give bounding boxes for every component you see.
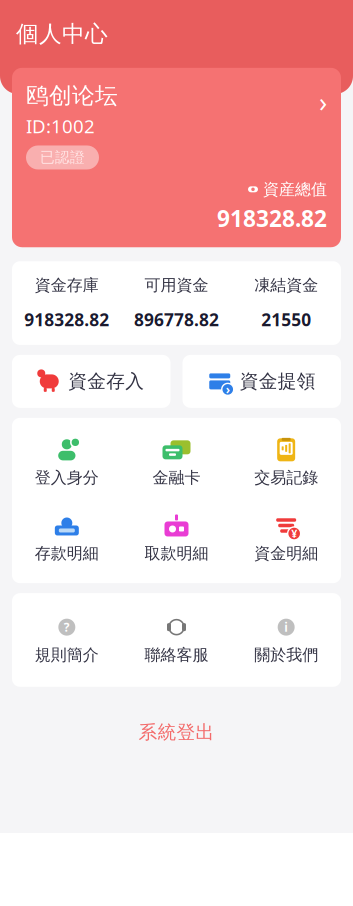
button[interactable]: 金融卡 bbox=[122, 432, 231, 493]
staticText: 896778.82 bbox=[134, 308, 219, 331]
button[interactable]: › bbox=[182, 355, 341, 408]
staticText: 21550 bbox=[261, 308, 311, 331]
staticText: 交易記錄 bbox=[254, 468, 318, 487]
staticText: 資産總值 bbox=[263, 179, 327, 199]
button[interactable]: 資金存入 bbox=[12, 355, 170, 408]
button[interactable]: ¥ bbox=[231, 507, 341, 569]
staticText: ID:1002 bbox=[26, 114, 95, 138]
staticText: 金融卡 bbox=[152, 468, 200, 487]
button[interactable]: 鸥创论坛 bbox=[12, 68, 341, 247]
staticText: 資金明細 bbox=[254, 543, 318, 563]
staticText: 資金提領 bbox=[240, 370, 316, 393]
staticText: 個人中心 bbox=[16, 20, 108, 48]
staticText: 918328.82 bbox=[24, 308, 109, 331]
button[interactable]: 交易記錄 bbox=[231, 432, 341, 493]
staticText: 可用資金 bbox=[144, 275, 208, 295]
staticText: 關於我們 bbox=[254, 645, 318, 665]
staticText: 登入身分 bbox=[35, 468, 99, 487]
staticText: 資金存入 bbox=[68, 370, 144, 393]
staticText: ? bbox=[64, 619, 70, 635]
staticText: 系統登出 bbox=[138, 721, 214, 744]
staticText: 取款明細 bbox=[144, 543, 208, 563]
staticText: 規則簡介 bbox=[35, 645, 99, 665]
button[interactable]: 系統登出 bbox=[108, 711, 244, 754]
staticText: i bbox=[284, 619, 288, 635]
staticText: 凍結資金 bbox=[254, 275, 318, 295]
staticText: 鸥创论坛 bbox=[26, 82, 118, 110]
staticText: 存款明細 bbox=[35, 543, 99, 563]
staticText: 資金存庫 bbox=[35, 275, 99, 295]
staticText: 聯絡客服 bbox=[144, 645, 208, 665]
button[interactable]: 登入身分 bbox=[12, 432, 122, 493]
button[interactable]: ? bbox=[12, 609, 122, 671]
button[interactable]: i bbox=[231, 609, 341, 671]
staticText: › bbox=[319, 84, 327, 119]
staticText: 已認證 bbox=[40, 148, 85, 166]
button[interactable]: 取款明細 bbox=[122, 507, 231, 569]
staticText: 918328.82 bbox=[217, 203, 327, 233]
button[interactable]: 聯絡客服 bbox=[122, 609, 231, 671]
staticText: ¥ bbox=[291, 526, 297, 541]
staticText: › bbox=[226, 381, 230, 397]
button[interactable]: 存款明細 bbox=[12, 507, 122, 569]
